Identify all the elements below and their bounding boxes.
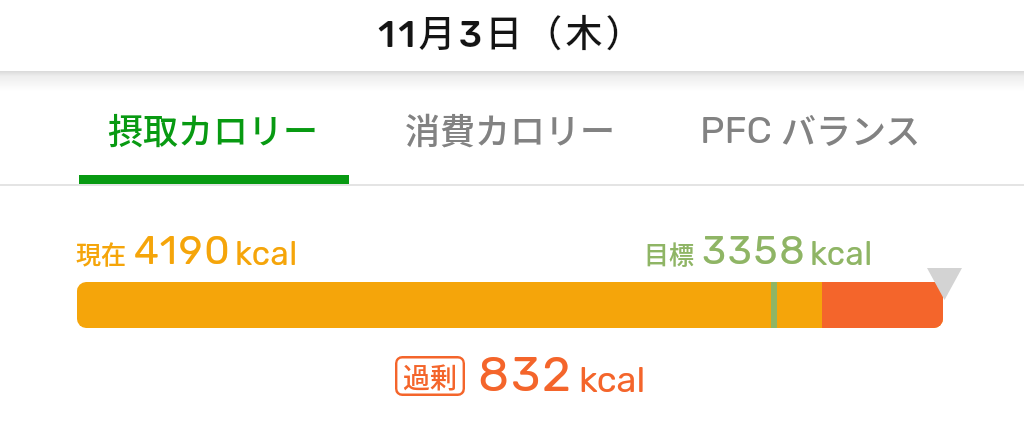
button[interactable]: 消費カロリー: [362, 95, 658, 161]
staticText: 過剰: [403, 357, 457, 396]
staticText: 摂取カロリー: [108, 103, 319, 154]
button[interactable]: PFC: [653, 95, 967, 161]
staticText: バランス: [781, 103, 921, 154]
button[interactable]: 摂取カロリー: [64, 95, 362, 161]
staticText: 4190: [134, 227, 232, 274]
staticText: 11月3日（木）: [378, 4, 646, 58]
other: Goal marker: [927, 268, 962, 300]
staticText: PFC: [700, 107, 772, 152]
staticText: 3358: [702, 227, 807, 274]
staticText: kcal: [579, 358, 646, 401]
staticText: 現在: [76, 235, 127, 271]
staticText: 832: [478, 345, 573, 403]
staticText: kcal: [235, 234, 298, 273]
staticText: 目標: [644, 235, 695, 271]
staticText: kcal: [810, 234, 873, 273]
staticText: 消費カロリー: [405, 103, 616, 154]
